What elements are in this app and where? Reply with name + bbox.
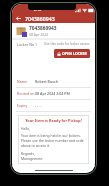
staticText: Hello, bbox=[21, 126, 31, 131]
button[interactable]: OPEN LOCKER bbox=[54, 49, 90, 58]
staticText: OPEN LOCKER bbox=[62, 51, 87, 56]
staticText: 08 Apr 2024 2:04 PM bbox=[35, 91, 70, 96]
button[interactable]: Back bbox=[14, 14, 23, 23]
staticText: Regards, bbox=[21, 151, 35, 156]
staticText: - - - - bbox=[35, 103, 43, 108]
staticText: Your Item is Ready for Pickup! bbox=[21, 118, 86, 123]
staticText: Management bbox=[21, 156, 43, 161]
staticText: 2:16 bbox=[34, 7, 42, 12]
staticText: 7043860943 bbox=[29, 25, 57, 32]
staticText: 08 Apr 2024 bbox=[29, 32, 49, 37]
staticText: 7043860943 bbox=[25, 15, 55, 22]
staticText: Routed on bbox=[17, 91, 35, 96]
staticText: Locker No 1 bbox=[17, 42, 38, 47]
staticText: Your item is being held in our lockers. … bbox=[21, 133, 86, 148]
staticText: Use this code for locker access bbox=[44, 42, 90, 46]
staticText: Name bbox=[17, 79, 35, 84]
staticText: Robert Busch bbox=[35, 79, 58, 84]
staticText: Expiry bbox=[17, 103, 35, 108]
